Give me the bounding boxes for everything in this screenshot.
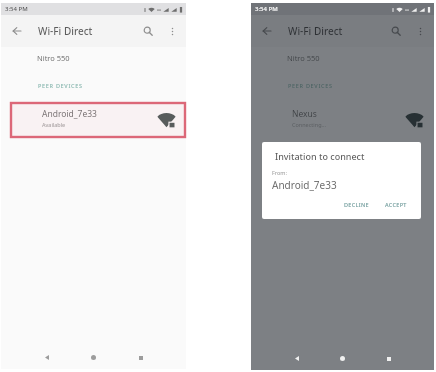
button[interactable]: Home — [335, 351, 350, 366]
button[interactable]: Nexus — [251, 106, 434, 138]
button[interactable]: Search — [139, 22, 157, 40]
staticText: Nitro 550 — [37, 53, 70, 63]
button[interactable]: More options — [163, 22, 181, 40]
staticText: DECLINE — [344, 201, 369, 208]
staticText: ACCEPT — [385, 201, 407, 208]
staticText: Wi-Fi Direct — [38, 24, 93, 38]
button[interactable]: DECLINE — [339, 198, 374, 211]
staticText: Wi-Fi Direct — [288, 24, 343, 38]
button[interactable]: Recent apps — [381, 351, 396, 366]
button[interactable]: Home — [86, 350, 101, 365]
button[interactable]: Navigate up — [8, 22, 26, 40]
button[interactable]: Nitro 550 — [251, 47, 434, 69]
staticText: PEER DEVICES — [38, 82, 83, 89]
button[interactable]: Recent apps — [133, 350, 148, 365]
button[interactable]: Back — [289, 351, 304, 366]
staticText: 3:54 PM — [5, 5, 28, 13]
staticText: Invitation to connect — [275, 150, 365, 162]
button[interactable]: Search — [387, 22, 405, 40]
button[interactable]: Back — [39, 350, 54, 365]
button[interactable]: Nitro 550 — [1, 47, 186, 69]
staticText: Android_7e33 — [272, 178, 337, 192]
staticText: From: — [272, 169, 287, 176]
staticText: Available — [42, 121, 66, 128]
staticText: Nexus — [292, 108, 317, 120]
staticText: Android_7e33 — [42, 108, 97, 120]
button[interactable]: More options — [411, 22, 429, 40]
button[interactable]: ACCEPT — [380, 198, 412, 211]
button[interactable]: Android_7e33 — [1, 106, 186, 138]
staticText: 3:54 PM — [255, 5, 278, 13]
button[interactable]: Navigate up — [258, 22, 276, 40]
staticText: Nitro 550 — [287, 53, 320, 63]
staticText: Connecting... — [292, 121, 326, 128]
staticText: PEER DEVICES — [288, 82, 333, 89]
